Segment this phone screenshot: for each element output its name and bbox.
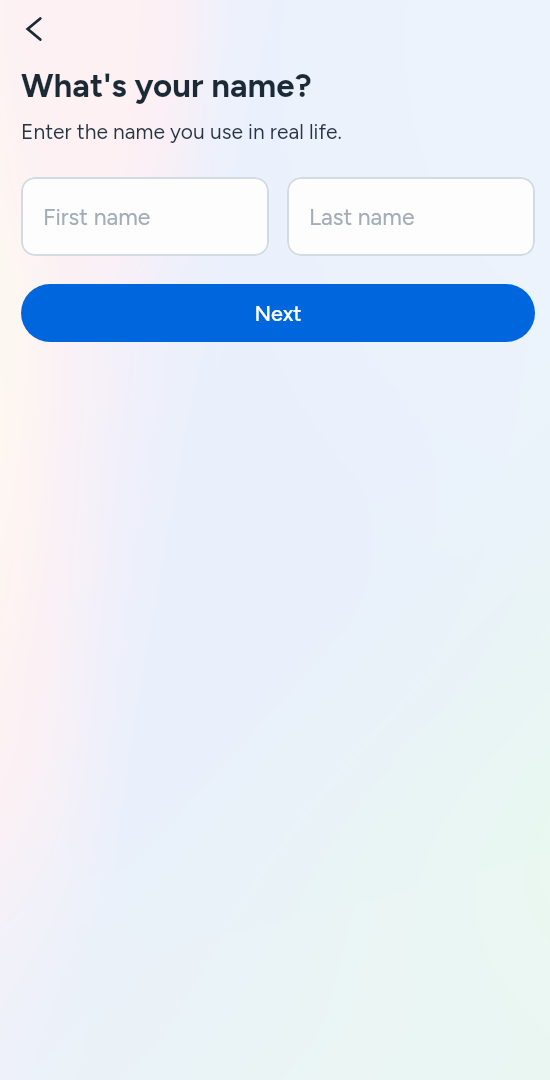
button[interactable]: First name	[21, 177, 269, 256]
staticText: Enter the name you use in real life.	[21, 119, 342, 144]
button[interactable]: Back	[11, 6, 56, 51]
staticText: Next	[254, 301, 302, 327]
staticText: Last name	[309, 203, 415, 231]
staticText: First name	[43, 203, 151, 231]
staticText: What's your name?	[21, 66, 312, 106]
button[interactable]: Next	[21, 284, 535, 342]
button[interactable]: Last name	[287, 177, 535, 256]
